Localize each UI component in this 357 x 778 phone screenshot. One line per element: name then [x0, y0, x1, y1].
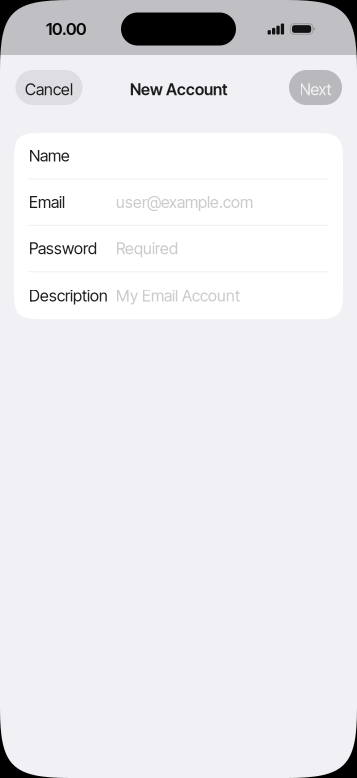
- button[interactable]: Next: [289, 70, 342, 105]
- staticText: Email: [29, 192, 65, 212]
- button[interactable]: Password: [14, 226, 343, 272]
- staticText: Cancel: [25, 80, 73, 99]
- staticText: Password: [29, 239, 97, 258]
- button[interactable]: Description: [14, 272, 343, 319]
- button[interactable]: Name: [14, 133, 343, 179]
- staticText: Description: [29, 286, 108, 305]
- staticText: Next: [299, 80, 331, 99]
- staticText: Name: [29, 146, 70, 165]
- staticText: My Email Account: [116, 286, 240, 305]
- staticText: user@example.com: [116, 192, 253, 212]
- button[interactable]: Cancel: [15, 70, 82, 105]
- staticText: 10.00: [46, 19, 86, 39]
- staticText: New Account: [130, 80, 227, 99]
- button[interactable]: Email: [14, 179, 343, 226]
- staticText: Required: [116, 239, 178, 258]
